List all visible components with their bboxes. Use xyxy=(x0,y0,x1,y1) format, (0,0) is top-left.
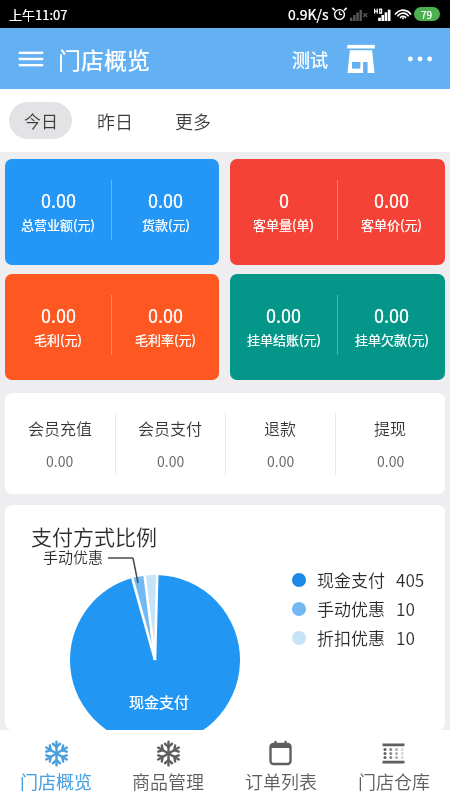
button[interactable]: 订单列表 xyxy=(224,730,337,800)
staticText: 商品管理 xyxy=(132,768,204,794)
button[interactable]: 提现 xyxy=(336,393,445,494)
button[interactable]: 0.00 xyxy=(5,274,219,380)
staticText: 挂单结账(元) xyxy=(247,330,321,349)
staticText: 0.00 xyxy=(377,451,405,471)
staticText: 货款(元) xyxy=(142,215,190,234)
staticText: 客单价(元) xyxy=(361,215,422,234)
button[interactable]: 今日 xyxy=(9,102,72,139)
staticText: 现金支付 xyxy=(317,567,385,592)
button[interactable]: 门店仓库 xyxy=(337,730,450,800)
staticText: 现金支付 xyxy=(129,691,190,713)
staticText: 更多 xyxy=(175,108,211,134)
staticText: 今日 xyxy=(24,108,58,133)
staticText: 昨日 xyxy=(97,108,133,134)
button[interactable]: 退款 xyxy=(226,393,335,494)
button[interactable]: 会员支付 xyxy=(116,393,225,494)
button[interactable]: 昨日 xyxy=(72,102,158,139)
staticText: 10 xyxy=(396,596,415,621)
staticText: 客单量(单) xyxy=(253,215,314,234)
button[interactable]: 0.00 xyxy=(5,159,219,265)
button[interactable]: 测试 xyxy=(288,38,332,80)
button[interactable]: 会员充值 xyxy=(5,393,115,494)
staticText: 门店概览 xyxy=(58,42,150,75)
staticText: 405 xyxy=(396,567,425,592)
staticText: 挂单欠款(元) xyxy=(355,330,429,349)
staticText: 门店概览 xyxy=(20,768,92,794)
button[interactable]: 门店概览 xyxy=(0,730,112,800)
staticText: 门店仓库 xyxy=(358,768,430,794)
button[interactable]: 0.00 xyxy=(230,274,445,380)
staticText: 0.00 xyxy=(46,451,74,471)
staticText: 总营业额(元) xyxy=(21,215,95,234)
staticText: 0.00 xyxy=(374,302,409,328)
staticText: 退款 xyxy=(264,416,297,439)
staticText: 毛利率(元) xyxy=(135,330,196,349)
button[interactable]: 0 xyxy=(230,159,445,265)
staticText: 会员支付 xyxy=(138,416,203,439)
button[interactable]: 商品管理 xyxy=(112,730,224,800)
staticText: 上午11:07 xyxy=(9,5,68,24)
staticText: 支付方式比例 xyxy=(31,521,157,551)
staticText: 0 xyxy=(279,187,289,213)
staticText: 10 xyxy=(396,625,415,650)
staticText: 0.9K/s xyxy=(288,4,329,24)
staticText: 手动优惠 xyxy=(317,596,385,621)
button[interactable]: Store xyxy=(343,41,379,77)
staticText: 会员充值 xyxy=(28,416,93,439)
staticText: 折扣优惠 xyxy=(317,625,385,650)
staticText: 订单列表 xyxy=(245,768,317,794)
staticText: 0.00 xyxy=(41,302,76,328)
staticText: 0.00 xyxy=(148,187,183,213)
staticText: 0.00 xyxy=(374,187,409,213)
button[interactable]: Menu xyxy=(12,40,50,78)
button[interactable]: More options xyxy=(402,41,438,77)
staticText: 79 xyxy=(421,7,433,21)
staticText: 0.00 xyxy=(148,302,183,328)
staticText: 手动优惠 xyxy=(43,546,104,568)
staticText: 测试 xyxy=(292,46,328,72)
staticText: 0.00 xyxy=(41,187,76,213)
staticText: 0.00 xyxy=(267,451,295,471)
staticText: 毛利(元) xyxy=(34,330,82,349)
staticText: 提现 xyxy=(374,416,407,439)
button[interactable]: 更多 xyxy=(158,102,228,139)
staticText: 0.00 xyxy=(157,451,185,471)
staticText: 0.00 xyxy=(266,302,301,328)
